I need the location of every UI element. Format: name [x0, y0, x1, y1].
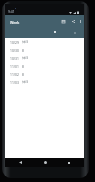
staticText: 11/01 — [10, 64, 19, 68]
button[interactable]: More options — [77, 18, 84, 25]
staticText: 9:41 — [8, 9, 15, 14]
button[interactable]: Home — [36, 158, 54, 167]
staticText: 11/03 — [10, 80, 19, 84]
staticText: 休日 — [22, 40, 29, 44]
staticText: 11/02 — [10, 72, 19, 76]
button[interactable]: 11/03 — [5, 78, 84, 86]
button[interactable]: 11/01 — [5, 62, 84, 70]
staticText: 10/30 — [10, 48, 19, 52]
staticText: 8 — [22, 48, 24, 52]
button[interactable]: 10/29 — [5, 38, 84, 46]
button[interactable]: 10/31 — [5, 54, 84, 62]
staticText: Week — [10, 20, 20, 25]
button[interactable]: Share — [70, 18, 77, 25]
staticText: 休日 — [22, 56, 29, 60]
staticText: 休日 — [22, 80, 29, 84]
staticText: 8 — [22, 64, 24, 68]
staticText: 10/29 — [10, 40, 19, 44]
staticText: 8 — [22, 72, 24, 76]
button[interactable]: 10/30 — [5, 46, 84, 54]
button[interactable]: Back — [11, 158, 29, 167]
button[interactable]: 11/02 — [5, 70, 84, 78]
button[interactable]: Recent apps — [60, 158, 78, 167]
staticText: 10/31 — [10, 56, 19, 60]
button[interactable]: Calendar — [60, 18, 67, 25]
